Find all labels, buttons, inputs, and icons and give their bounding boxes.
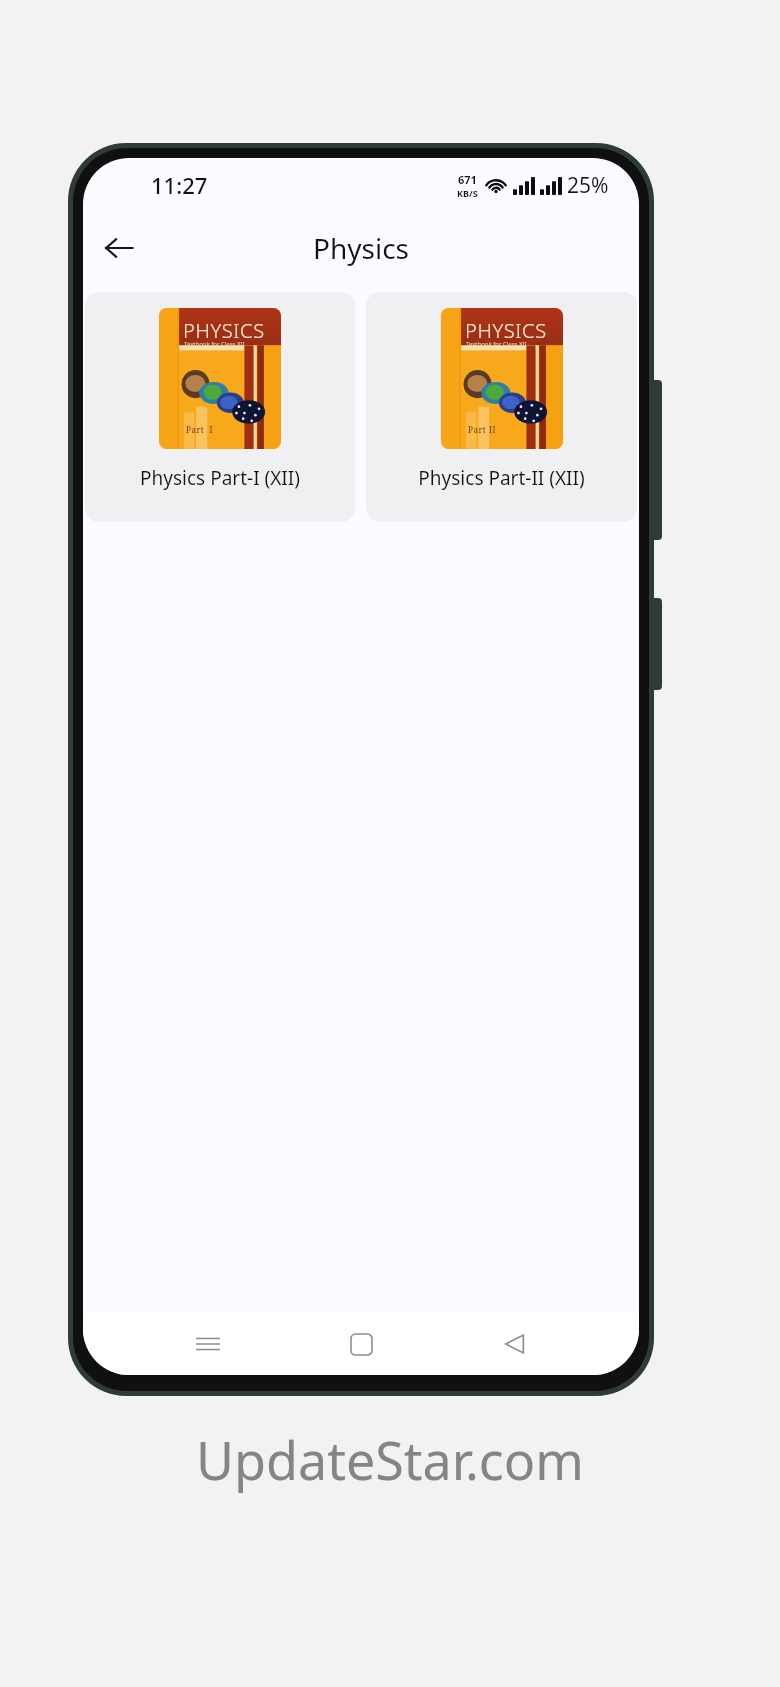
button[interactable]: PHYSICS xyxy=(85,292,355,522)
button[interactable]: Back xyxy=(486,1315,544,1373)
staticText: PHYSICS xyxy=(183,317,265,344)
staticText: 25% xyxy=(567,171,609,200)
button[interactable]: Recents xyxy=(179,1315,237,1373)
staticText: KB/S xyxy=(457,187,478,199)
staticText: Physics xyxy=(313,229,410,267)
button[interactable]: Home xyxy=(332,1315,390,1373)
staticText: 11:27 xyxy=(151,170,208,200)
button[interactable]: PHYSICS xyxy=(366,292,637,522)
button[interactable]: Back xyxy=(91,220,147,276)
staticText: Textbook for Class XII xyxy=(184,340,245,348)
staticText: 671 xyxy=(458,172,477,187)
staticText: UpdateStar.com xyxy=(196,1424,584,1495)
staticText: Part II xyxy=(468,424,496,435)
staticText: Physics Part-I (XII) xyxy=(140,465,300,491)
staticText: Part I xyxy=(186,424,213,435)
staticText: PHYSICS xyxy=(465,317,547,344)
staticText: Physics Part-II (XII) xyxy=(418,465,585,491)
staticText: Textbook for Class XII xyxy=(466,340,527,348)
